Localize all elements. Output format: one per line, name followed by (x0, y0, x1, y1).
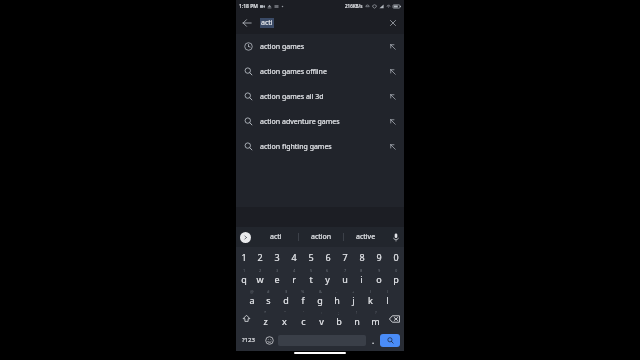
button[interactable]: 1 (236, 247, 252, 266)
button[interactable]: ! (348, 308, 366, 329)
button[interactable]: 8 (353, 247, 370, 266)
staticText: . (372, 335, 375, 346)
staticText: 8 (359, 251, 365, 263)
button[interactable]: 8 (353, 266, 370, 287)
staticText: 9 (378, 268, 381, 273)
staticText: b (336, 315, 342, 327)
button[interactable]: 6 (319, 247, 336, 266)
button[interactable]: Expand toolbar (240, 232, 251, 243)
button[interactable]: acti (258, 12, 382, 34)
staticText: action (311, 232, 332, 242)
button[interactable]: 3 (268, 247, 285, 266)
button[interactable]: 7 (336, 247, 353, 266)
button[interactable]: Insert action adventure games (382, 109, 404, 134)
button[interactable]: 6 (319, 266, 336, 287)
staticText: l (386, 294, 389, 306)
staticText: e (274, 273, 280, 285)
button[interactable]: action fighting games (236, 134, 404, 159)
button[interactable]: ' (294, 308, 312, 329)
button[interactable]: 5 (302, 266, 319, 287)
button[interactable]: 4 (285, 247, 302, 266)
button[interactable]: Search (380, 334, 400, 347)
button[interactable]: Insert action fighting games (382, 134, 404, 159)
button[interactable]: action games offline (236, 59, 404, 84)
button[interactable]: 0 (387, 247, 404, 266)
button[interactable]: action adventure games (236, 109, 404, 134)
staticText: 1:18 PM (239, 3, 258, 10)
staticText: # (267, 289, 270, 294)
button[interactable]: * (256, 308, 275, 329)
staticText: $ (285, 289, 288, 294)
staticText: 1 (241, 251, 247, 263)
button[interactable]: Clear (382, 12, 404, 34)
button[interactable]: 9 (370, 247, 387, 266)
staticText: s (266, 294, 271, 306)
button[interactable]: % (294, 287, 311, 308)
button[interactable]: 1 (236, 266, 252, 287)
button[interactable]: . (366, 329, 380, 351)
staticText: 4 (293, 268, 296, 273)
staticText: 6 (326, 268, 329, 273)
button[interactable]: action games all 3d (236, 84, 404, 109)
button[interactable]: Shift (236, 308, 256, 329)
staticText: 0 (393, 251, 399, 263)
button[interactable]: Insert action games offline (382, 59, 404, 84)
button[interactable]: acti (254, 227, 298, 247)
staticText: o (376, 273, 382, 285)
staticText: 5 (310, 268, 313, 273)
staticText: 3 (274, 251, 280, 263)
button[interactable]: 4 (285, 266, 302, 287)
button[interactable]: action games (236, 34, 404, 59)
button[interactable]: - (328, 287, 345, 308)
staticText: f (301, 294, 305, 306)
button[interactable]: active (344, 227, 388, 247)
button[interactable]: 5 (302, 247, 319, 266)
staticText: h (334, 294, 340, 306)
button[interactable]: ) (379, 287, 396, 308)
button[interactable]: @ (244, 287, 260, 308)
button[interactable]: $ (277, 287, 294, 308)
button[interactable]: 2 (252, 247, 268, 266)
button[interactable]: & (311, 287, 328, 308)
staticText: i (360, 273, 363, 285)
staticText: m (371, 315, 380, 327)
button[interactable]: Backspace (384, 308, 404, 329)
staticText: " (284, 310, 286, 315)
button[interactable]: 9 (370, 266, 387, 287)
staticText: r (292, 273, 296, 285)
button[interactable]: ?123 (236, 329, 260, 351)
staticText: @ (250, 289, 254, 294)
button[interactable]: " (275, 308, 294, 329)
staticText: g (317, 294, 323, 306)
button[interactable]: Insert action games all 3d (382, 84, 404, 109)
button[interactable]: action (299, 227, 343, 247)
button[interactable]: Emoji (260, 329, 278, 351)
button[interactable]: + (345, 287, 362, 308)
staticText: ? (375, 310, 377, 315)
staticText: action games offline (260, 67, 382, 77)
staticText: z (263, 315, 268, 327)
button[interactable]: ? (366, 308, 384, 329)
staticText: + (352, 289, 355, 294)
button[interactable]: Back (236, 12, 258, 34)
staticText: q (241, 273, 247, 285)
staticText: 0 (395, 268, 398, 273)
staticText: u (342, 273, 348, 285)
button[interactable]: : (312, 308, 330, 329)
button[interactable]: 0 (387, 266, 404, 287)
staticText: 7 (342, 251, 348, 263)
button[interactable]: ( (362, 287, 379, 308)
button[interactable]: 2 (252, 266, 268, 287)
staticText: ' (303, 310, 304, 315)
staticText: ) (387, 289, 389, 294)
staticText: action adventure games (260, 117, 382, 127)
button[interactable]: ; (330, 308, 348, 329)
button[interactable]: 3 (268, 266, 285, 287)
staticText: 216KB/s (345, 3, 363, 9)
button[interactable]: 7 (336, 266, 353, 287)
button[interactable]: # (260, 287, 277, 308)
staticText: j (352, 294, 355, 306)
button[interactable]: Voice input (388, 227, 404, 247)
button[interactable]: Insert action games (382, 34, 404, 59)
